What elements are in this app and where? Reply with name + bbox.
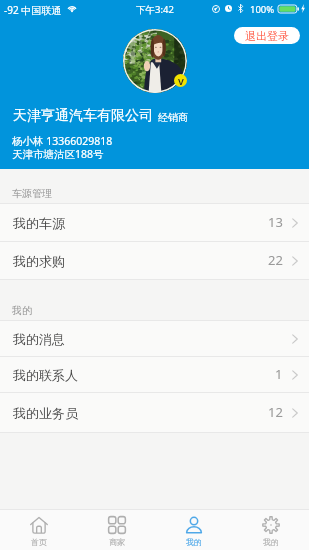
button[interactable]: 我的求购 — [0, 242, 309, 280]
staticText: 天津亨通汽车有限公司 — [13, 107, 153, 125]
staticText: 首页 — [31, 537, 47, 547]
button[interactable]: 我的联系人 — [0, 357, 309, 393]
staticText: 下午3:42 — [136, 3, 174, 16]
staticText: 我的 — [186, 537, 202, 547]
button[interactable]: 退出登录 — [234, 27, 300, 44]
button[interactable]: 我的消息 — [0, 321, 309, 357]
staticText: 我的消息 — [13, 331, 65, 347]
staticText: 车源管理 — [12, 187, 52, 200]
button[interactable]: 首页 — [0, 510, 78, 550]
staticText: 退出登录 — [245, 29, 289, 43]
staticText: 我的 — [263, 537, 279, 547]
staticText: -92 中国联通 — [4, 3, 62, 17]
button[interactable]: 我的 — [232, 510, 309, 550]
staticText: 100% — [250, 3, 275, 16]
staticText: 12 — [268, 403, 283, 421]
button[interactable]: 我的车源 — [0, 204, 309, 242]
button[interactable]: 我的业务员 — [0, 393, 309, 433]
staticText: 杨小林 13366029818 — [12, 134, 113, 148]
staticText: 我的求购 — [13, 253, 65, 269]
staticText: 我的业务员 — [13, 405, 78, 421]
button[interactable]: 商家 — [78, 510, 155, 550]
staticText: 我的车源 — [13, 215, 65, 231]
staticText: 22 — [268, 251, 283, 269]
staticText: V — [178, 75, 184, 87]
staticText: 商家 — [109, 537, 125, 547]
staticText: 我的联系人 — [13, 367, 78, 383]
staticText: 天津市塘沽区188号 — [12, 147, 104, 161]
staticText: 经销商 — [158, 111, 188, 124]
staticText: 我的 — [12, 304, 32, 317]
staticText: 1 — [275, 365, 283, 383]
button[interactable]: 我的 — [155, 510, 232, 550]
staticText: 13 — [268, 213, 283, 231]
